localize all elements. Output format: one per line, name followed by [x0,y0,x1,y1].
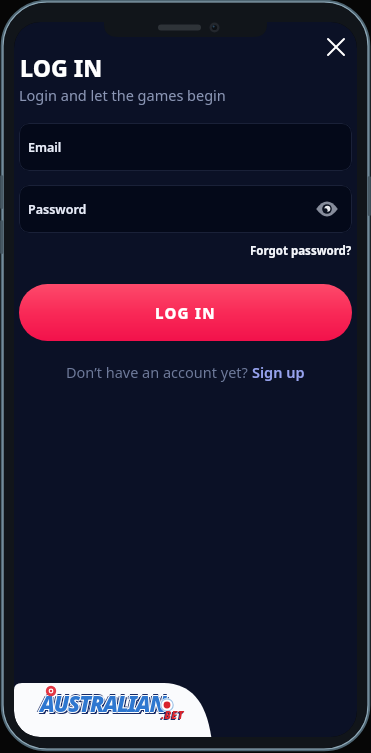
staticText: Forgot password? [250,243,352,259]
staticText: AUSTRALIAN [38,688,164,718]
staticText: Sign up [252,362,305,382]
staticText: Password [28,201,87,218]
button[interactable]: Forgot password? [250,243,352,259]
staticText: .BET [160,708,183,723]
staticText: .BET [161,707,184,722]
staticText: AUSTRALIAN [39,688,165,718]
button[interactable]: Email [19,123,352,171]
staticText: Email [28,139,62,156]
staticText: AUSTRALIAN [40,687,166,717]
staticText: LOG IN [20,52,103,83]
staticText: AUSTRALIAN [42,690,168,720]
staticText: AUSTRALIAN [40,686,166,716]
button[interactable]: Sign up [252,362,305,382]
staticText: AUSTRALIAN [40,689,166,719]
button[interactable] [314,196,340,222]
button[interactable]: Password [19,185,352,233]
staticText: AUSTRALIAN [41,688,167,718]
staticText: AUSTRALIAN [40,690,166,720]
button[interactable] [320,31,352,63]
staticText: AUSTRALIAN [42,689,168,719]
button[interactable]: LOG IN [19,284,352,341]
staticText: Don’t have an account yet? [66,362,252,382]
staticText: AUSTRALIAN [40,688,166,718]
staticText: Login and let the games begin [19,85,226,105]
staticText: LOG IN [155,303,216,323]
